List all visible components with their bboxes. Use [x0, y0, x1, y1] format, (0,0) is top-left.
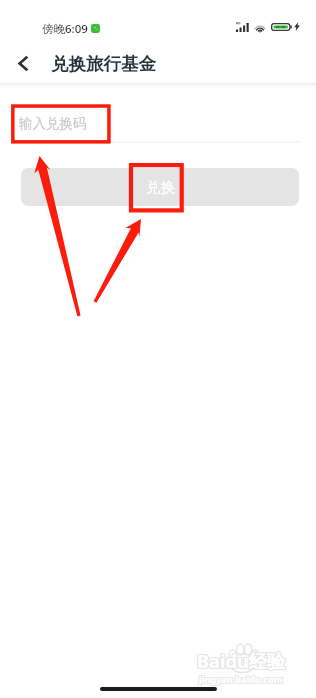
- button[interactable]: 返回: [9, 49, 38, 78]
- staticText: jingyan.baidu.com: [198, 673, 282, 685]
- button[interactable]: 兑换: [21, 168, 299, 206]
- staticText: jingyan.baidu.com: [199, 674, 283, 686]
- staticText: jingyan.baidu.com: [200, 674, 284, 686]
- staticText: Baidu经验: [197, 650, 286, 675]
- staticText: jingyan.baidu.com: [200, 672, 284, 684]
- staticText: Baidu经验: [198, 648, 287, 673]
- staticText: 兑换旅行基金: [51, 53, 156, 75]
- staticText: jingyan.baidu.com: [200, 673, 284, 685]
- staticText: Baidu经验: [197, 649, 286, 674]
- staticText: jingyan.baidu.com: [199, 673, 283, 685]
- button[interactable]: 输入兑换码: [0, 105, 316, 141]
- staticText: jingyan.baidu.com: [198, 674, 282, 686]
- staticText: Baidu经验: [198, 650, 287, 675]
- staticText: Baidu经验: [196, 648, 285, 673]
- staticText: Baidu经验: [196, 649, 285, 674]
- staticText: Baidu经验: [197, 648, 286, 673]
- staticText: 傍晚6:09: [42, 21, 88, 37]
- staticText: 兑换: [146, 178, 175, 196]
- staticText: Baidu经验: [198, 649, 287, 674]
- staticText: Baidu经验: [196, 650, 285, 675]
- staticText: 输入兑换码: [19, 115, 87, 132]
- staticText: jingyan.baidu.com: [199, 672, 283, 684]
- staticText: jingyan.baidu.com: [198, 672, 282, 684]
